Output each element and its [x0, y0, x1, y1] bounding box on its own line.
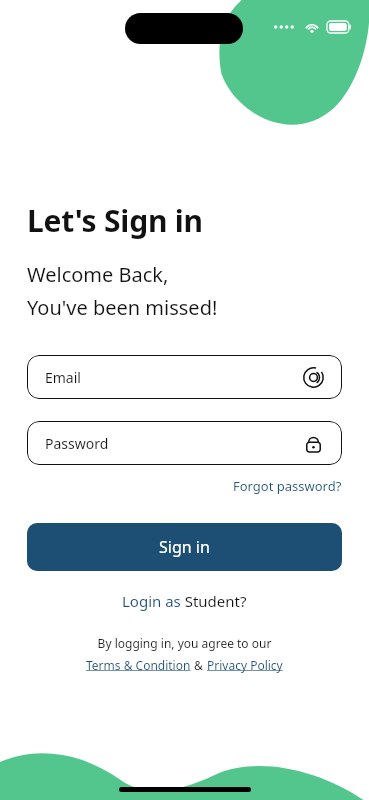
staticText: Terms & Condition: [86, 657, 191, 673]
button[interactable]: Login as Student?: [118, 589, 251, 613]
staticText: Login as Student?: [122, 591, 247, 611]
staticText: Password: [45, 434, 303, 453]
staticText: &: [191, 657, 207, 673]
staticText: Privacy Policy: [207, 657, 283, 673]
staticText: Email: [45, 368, 303, 387]
staticText: Forgot password?: [233, 477, 342, 495]
staticText: Let's Sign in: [27, 200, 203, 241]
staticText: Sign in: [159, 536, 210, 558]
button[interactable]: Email: [27, 355, 342, 399]
staticText: By logging in, you agree to our: [27, 635, 342, 651]
button[interactable]: Terms & Condition: [86, 657, 191, 673]
staticText: You've been missed!: [27, 294, 218, 321]
button[interactable]: Forgot password?: [233, 475, 342, 497]
button[interactable]: Password: [27, 421, 342, 465]
other: Home indicator: [119, 787, 251, 792]
staticText: Welcome Back,: [27, 261, 169, 288]
button[interactable]: Privacy Policy: [207, 657, 283, 673]
button[interactable]: Sign in: [27, 523, 342, 571]
